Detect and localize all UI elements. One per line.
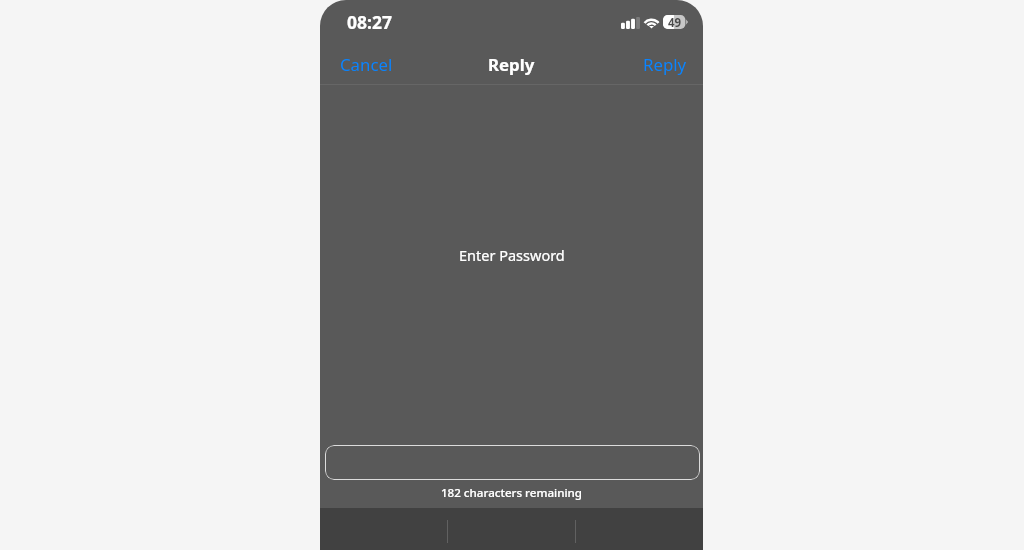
staticText: Reply [488, 53, 535, 76]
staticText: Enter Password [459, 245, 565, 265]
staticText: 08:27 [347, 10, 392, 34]
other: Wi-Fi [644, 15, 659, 28]
staticText: 182 characters remaining [320, 485, 703, 501]
button[interactable]: Cancel [320, 44, 413, 84]
other: Battery 49 percent [663, 15, 688, 29]
staticText: Cancel [340, 53, 393, 76]
staticText: Reply [643, 53, 687, 76]
other: Cellular signal [621, 16, 640, 29]
button[interactable]: Reply message text field [325, 445, 700, 480]
button[interactable]: Reply [623, 44, 703, 84]
staticText: 49 [668, 15, 682, 29]
